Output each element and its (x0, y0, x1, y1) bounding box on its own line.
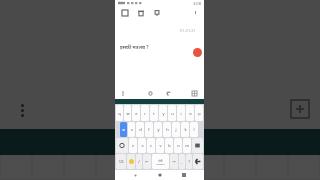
button[interactable]: j (172, 122, 180, 137)
button[interactable]: r (141, 105, 149, 121)
button[interactable]: y (159, 105, 167, 121)
button[interactable]: Contact avatar (193, 48, 202, 57)
button[interactable]: z (129, 138, 137, 153)
button[interactable]: k (181, 122, 189, 137)
button[interactable]: हिंदी English (152, 154, 169, 169)
staticText: / (138, 159, 140, 164)
staticText: y (162, 111, 165, 116)
button[interactable]: Menu (120, 89, 129, 98)
staticText: n (177, 143, 180, 148)
staticText: c (150, 143, 152, 148)
button[interactable]: इसकी मतलब ? (120, 44, 149, 51)
staticText: e (135, 111, 138, 116)
staticText: a (122, 127, 125, 132)
button[interactable]: o (186, 105, 194, 121)
staticText: w (126, 111, 130, 116)
staticText: j (175, 127, 177, 132)
button[interactable]: t (150, 105, 158, 121)
staticText: y (157, 127, 160, 132)
button[interactable]: b (165, 138, 173, 153)
button[interactable]: Delete (135, 7, 146, 18)
staticText: हिंदी English (156, 159, 165, 165)
button[interactable]: 123 (116, 154, 126, 169)
button[interactable]: l (190, 122, 198, 137)
button[interactable]: Archive (119, 7, 130, 18)
staticText: p (198, 111, 201, 116)
button[interactable]: y (154, 122, 162, 137)
button[interactable]: u (168, 105, 176, 121)
staticText: h (166, 127, 169, 132)
button[interactable]: h (163, 122, 171, 137)
button[interactable]: Shift (116, 138, 128, 153)
staticText: ? (188, 159, 190, 164)
button[interactable]: Emoji (127, 154, 135, 169)
button[interactable]: Mark unread (151, 7, 162, 18)
button[interactable]: n (174, 138, 182, 153)
staticText: b (168, 143, 171, 148)
button[interactable]: Keyboard (190, 89, 199, 98)
button[interactable]: Add (291, 100, 309, 118)
staticText: 3:08 (193, 1, 201, 6)
staticText: r (144, 111, 146, 116)
button[interactable]: Back (130, 170, 140, 180)
button[interactable]: x (138, 138, 146, 153)
staticText: i (180, 111, 182, 116)
staticText: ← (145, 159, 149, 164)
button[interactable]: q (116, 105, 123, 121)
button[interactable]: More options (17, 101, 27, 119)
button[interactable]: m (183, 138, 191, 153)
staticText: z (132, 143, 134, 148)
staticText: u (171, 111, 174, 116)
button[interactable]: p (195, 105, 203, 121)
staticText: 01:21:21 (180, 28, 196, 33)
staticText: v (159, 143, 162, 148)
button[interactable]: e (132, 105, 140, 121)
button[interactable]: Recents (179, 170, 189, 180)
button[interactable]: Home (146, 89, 155, 98)
button[interactable]: Home (155, 170, 165, 180)
staticText: d (139, 127, 142, 132)
staticText: m (185, 143, 189, 148)
staticText: t (153, 111, 155, 116)
button[interactable]: / (136, 154, 142, 169)
button[interactable]: ← (143, 154, 151, 169)
button[interactable]: More options (191, 7, 200, 18)
staticText: s (131, 127, 133, 132)
button[interactable]: f (145, 122, 153, 137)
button[interactable]: i (177, 105, 185, 121)
staticText: f (148, 127, 150, 132)
staticText: q (118, 111, 121, 116)
staticText: x (141, 143, 144, 148)
button[interactable]: ? (186, 154, 192, 169)
button[interactable]: w (124, 105, 131, 121)
button[interactable]: Back (164, 89, 173, 98)
staticText: 123 (118, 160, 124, 164)
button[interactable]: d (136, 122, 144, 137)
staticText: , (181, 159, 183, 164)
staticText: o (189, 111, 192, 116)
button[interactable]: c (147, 138, 155, 153)
button[interactable]: a (120, 122, 127, 137)
button[interactable]: v (156, 138, 164, 153)
button[interactable]: , (179, 154, 185, 169)
staticText: → (172, 159, 176, 164)
button[interactable]: s (128, 122, 135, 137)
staticText: k (184, 127, 187, 132)
staticText: l (193, 127, 195, 132)
button[interactable]: → (170, 154, 178, 169)
button[interactable]: Enter (193, 154, 203, 169)
button[interactable]: Backspace (192, 138, 203, 153)
